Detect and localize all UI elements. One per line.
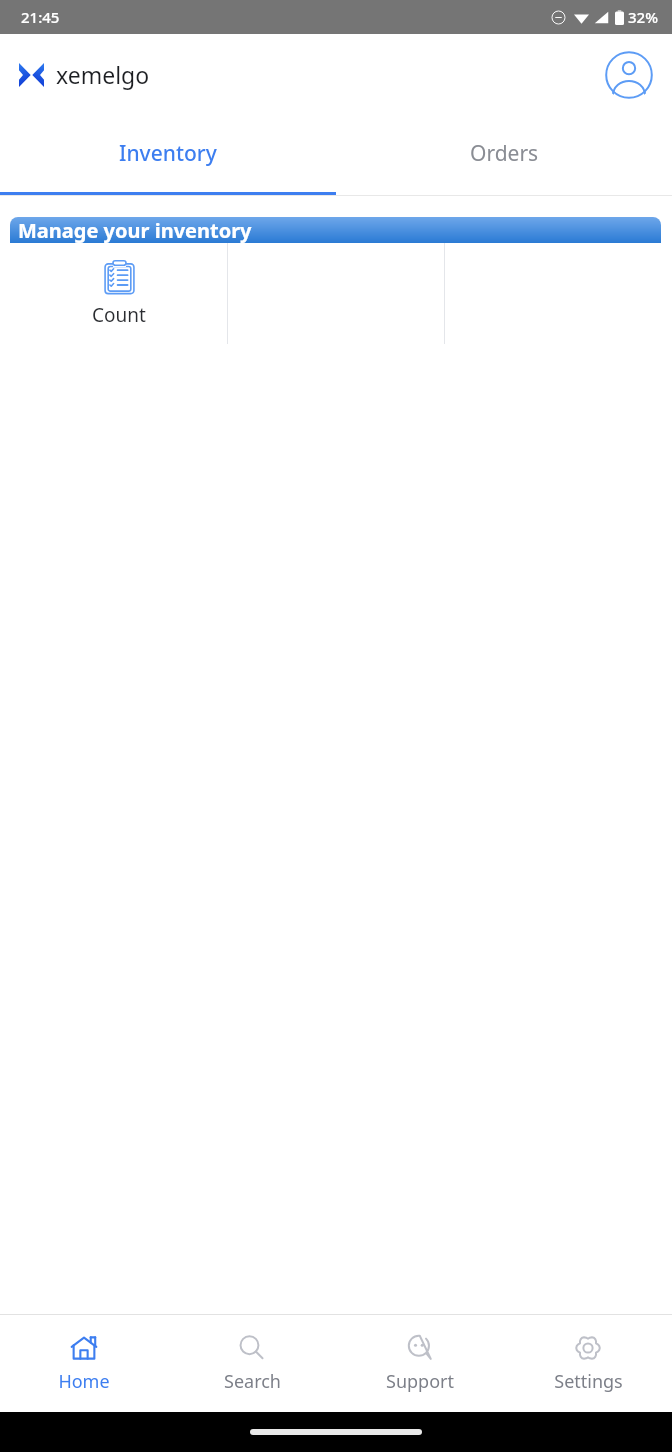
staticText: Home [58, 1369, 110, 1394]
button[interactable]: Account [604, 50, 654, 100]
staticText: Search [224, 1369, 281, 1394]
button[interactable]: Support [336, 1315, 504, 1412]
button[interactable]: Home [0, 1315, 168, 1412]
button[interactable]: Settings [504, 1315, 672, 1412]
staticText: Manage your inventory [18, 217, 252, 243]
button[interactable]: Orders [336, 115, 672, 192]
staticText: 32% [628, 7, 658, 27]
staticText: xemelgo [56, 59, 150, 90]
button[interactable]: Count [10, 243, 227, 344]
staticText: Orders [470, 139, 539, 168]
staticText: Inventory [119, 139, 217, 168]
staticText: Support [386, 1369, 454, 1394]
button[interactable]: Inventory [0, 115, 336, 192]
staticText: Count [92, 302, 146, 328]
button[interactable]: xemelgo [19, 59, 150, 90]
staticText: Settings [554, 1369, 623, 1394]
button[interactable]: Search [168, 1315, 336, 1412]
staticText: 21:45 [21, 7, 60, 27]
